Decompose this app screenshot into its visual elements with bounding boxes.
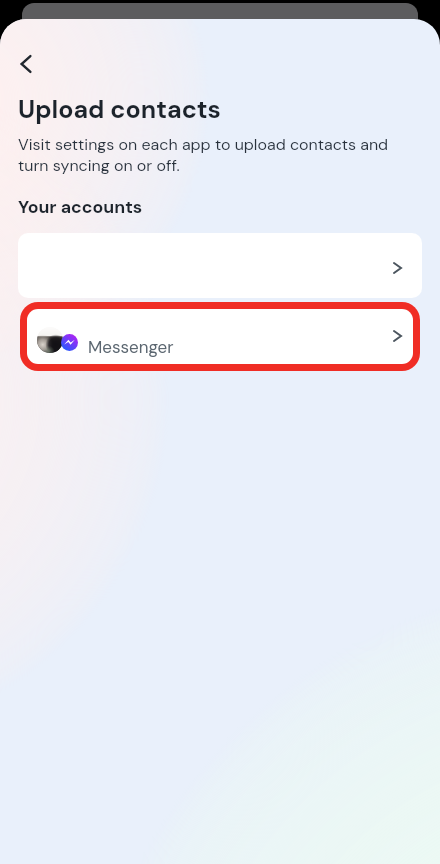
staticText: Visit settings on each app to upload con…: [18, 134, 412, 176]
staticText: Upload contacts: [18, 93, 221, 126]
button[interactable]: Account: [18, 233, 422, 298]
button[interactable]: Messenger: [20, 302, 420, 371]
button[interactable]: Back: [4, 42, 48, 86]
staticText: Messenger: [88, 336, 174, 358]
staticText: Your accounts: [18, 195, 143, 218]
